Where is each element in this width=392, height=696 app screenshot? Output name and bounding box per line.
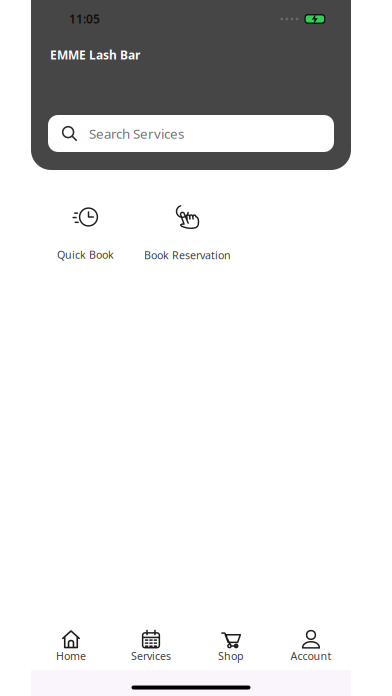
staticText: Shop — [218, 649, 244, 663]
staticText: Quick Book — [57, 247, 114, 262]
button[interactable]: Book Reservation — [129, 204, 246, 264]
button[interactable]: Services — [111, 614, 191, 670]
button[interactable]: Home — [31, 614, 111, 670]
staticText: Account — [290, 649, 331, 663]
button[interactable]: Account — [271, 614, 351, 670]
staticText: EMME Lash Bar — [50, 47, 140, 63]
button[interactable]: Search Services — [48, 115, 334, 152]
staticText: Home — [56, 649, 86, 663]
staticText: Search Services — [89, 125, 184, 142]
staticText: Services — [131, 649, 171, 663]
button[interactable]: Quick Book — [42, 204, 129, 264]
staticText: Book Reservation — [144, 248, 231, 262]
staticText: 11:05 — [69, 11, 100, 27]
button[interactable]: Shop — [191, 614, 271, 670]
